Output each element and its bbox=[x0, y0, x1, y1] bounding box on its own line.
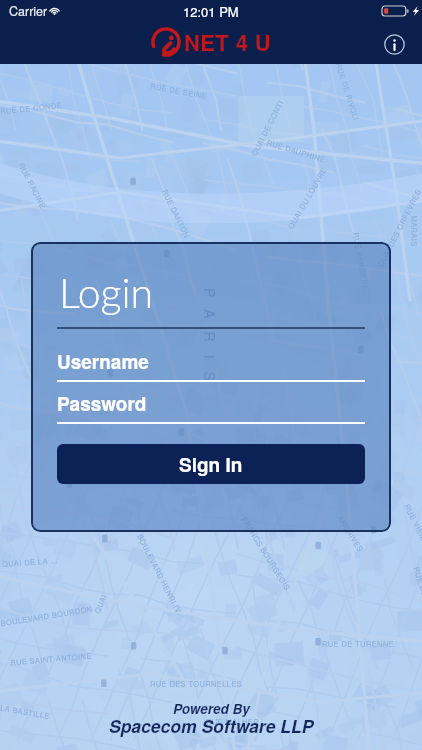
button[interactable]: Sign In bbox=[57, 444, 365, 484]
staticText: QUAI DE LA ... bbox=[2, 554, 58, 569]
staticText: BOULEVARD HENRI IV bbox=[135, 532, 185, 615]
staticText: MARAIS bbox=[408, 215, 419, 247]
staticText: QUAI DES ORFEVRES bbox=[375, 187, 422, 268]
staticText: ARCHIVES bbox=[335, 513, 367, 554]
staticText: RUE DANTON bbox=[160, 187, 193, 240]
staticText: Login bbox=[59, 268, 154, 317]
staticText: FRANCS BOURGEOIS bbox=[239, 514, 294, 592]
staticText: RUE SAINT ANTOINE bbox=[10, 649, 92, 667]
staticText: Password bbox=[57, 390, 147, 417]
staticText: Carrier bbox=[9, 2, 48, 20]
staticText: RUE MALHER bbox=[206, 716, 260, 727]
staticText: 12:01 PM bbox=[183, 2, 239, 21]
staticText: RUE DE TURENNE bbox=[322, 638, 395, 649]
staticText: Sign In bbox=[179, 451, 243, 478]
staticText: Powered By bbox=[173, 699, 250, 718]
staticText: RUE DAUPHINE bbox=[266, 136, 327, 165]
staticText: QUAI bbox=[91, 592, 109, 615]
staticText: QUAI DU LOUVRE bbox=[285, 164, 329, 230]
staticText: QUAI DE CONTI bbox=[248, 97, 286, 158]
staticText: RUE VIEILLE DU TEMPLE bbox=[402, 502, 422, 595]
staticText: BOULEVARD BOURDON bbox=[0, 603, 93, 628]
staticText: NET 4 U bbox=[184, 26, 272, 58]
staticText: RUE DE CONDE bbox=[0, 99, 63, 116]
staticText: LA BASTILLE bbox=[0, 702, 51, 721]
staticText: RUE DE BRETAGNE bbox=[411, 565, 422, 642]
staticText: Username bbox=[57, 348, 149, 375]
button[interactable]: Info bbox=[379, 29, 409, 59]
staticText: RUE DE SEINE bbox=[149, 80, 208, 101]
staticText: RUE DES TOURNELLES bbox=[150, 678, 243, 689]
staticText: RUE DE RIVOLI bbox=[333, 61, 362, 122]
staticText: Spacecom Software LLP bbox=[109, 713, 314, 738]
staticText: RUE RACINE bbox=[17, 161, 49, 210]
staticText: PARIS bbox=[200, 288, 220, 394]
staticText: RUE BERGERE bbox=[351, 231, 372, 291]
